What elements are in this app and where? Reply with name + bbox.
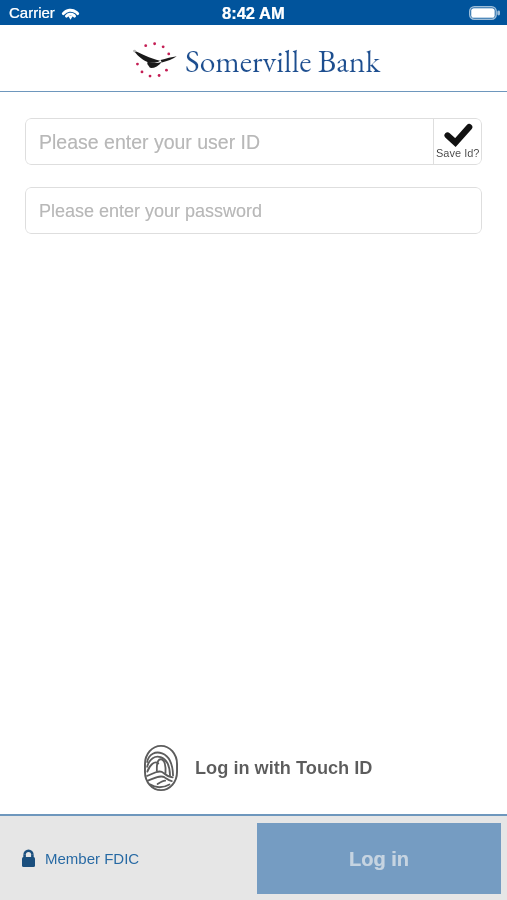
staticText: Please enter your password — [39, 201, 263, 221]
staticText: Somerville Bank — [185, 40, 381, 81]
staticText: Save Id? — [436, 147, 480, 159]
button[interactable]: Secure — [22, 849, 140, 867]
other: Secure — [22, 849, 35, 867]
staticText: Carrier — [9, 4, 55, 21]
staticText: Member FDIC — [45, 850, 140, 867]
button[interactable]: Touch ID fingerprint — [143, 744, 373, 792]
staticText: 8:42 AM — [222, 4, 285, 22]
button[interactable]: Please enter your password — [25, 187, 482, 234]
staticText: Please enter your user ID — [39, 131, 261, 153]
other: Wi-Fi — [61, 6, 80, 20]
button[interactable]: Please enter your user ID — [25, 118, 433, 165]
other: Touch ID fingerprint — [143, 744, 179, 792]
staticText: Log in — [349, 848, 409, 870]
button[interactable]: Save Id? — [434, 118, 482, 165]
button[interactable]: Log in — [257, 823, 501, 894]
staticText: Log in with Touch ID — [195, 758, 373, 778]
